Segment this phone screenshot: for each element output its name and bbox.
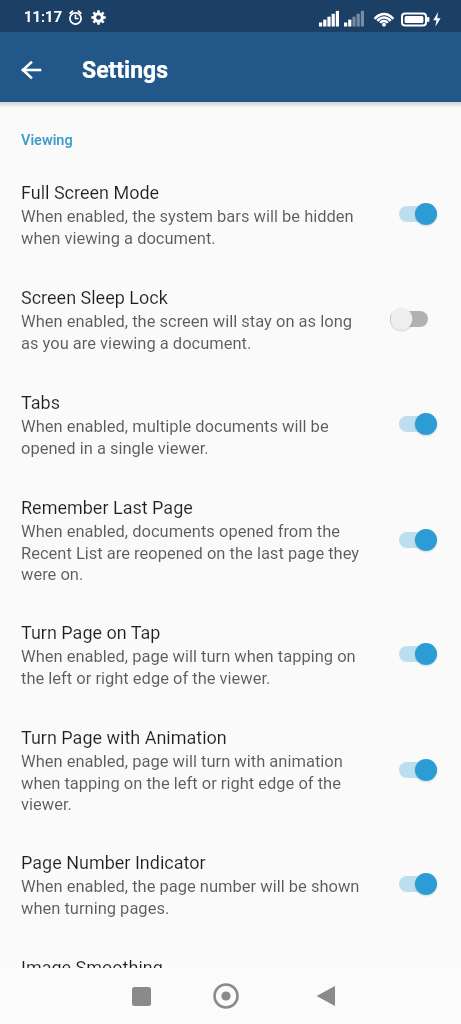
button[interactable] <box>390 201 437 227</box>
staticText: When enabled, the system bars will be hi… <box>21 207 354 248</box>
staticText: Remember Last Page <box>21 497 193 518</box>
staticText: Viewing <box>21 132 73 149</box>
staticText: When enabled, documents opened from the … <box>21 522 360 584</box>
button[interactable]: Page Number Indicator <box>0 852 461 957</box>
button[interactable] <box>117 972 165 1020</box>
staticText: When enabled, page will turn with animat… <box>21 752 343 814</box>
staticText: Image Smoothing <box>21 957 163 978</box>
button[interactable]: Image Smoothing <box>0 957 461 1024</box>
staticText: Turn Page with Animation <box>21 727 227 748</box>
staticText: When enabled, the screen will stay on as… <box>21 312 353 353</box>
button[interactable] <box>390 306 437 332</box>
button[interactable] <box>302 972 350 1020</box>
button[interactable]: Turn Page on Tap <box>0 622 461 727</box>
button[interactable]: Screen Sleep Lock <box>0 287 461 392</box>
button[interactable] <box>202 972 250 1020</box>
button[interactable]: Tabs <box>0 392 461 497</box>
staticText: When enabled, page will turn when tappin… <box>21 647 356 688</box>
staticText: When enabled, the image will be smoothed… <box>21 982 335 1023</box>
button[interactable] <box>390 527 437 553</box>
staticText: When enabled, multiple documents will be… <box>21 417 329 458</box>
staticText: Settings <box>82 57 169 84</box>
staticText: Full Screen Mode <box>21 182 160 203</box>
button[interactable] <box>390 641 437 667</box>
staticText: Tabs <box>21 392 60 413</box>
button[interactable]: Remember Last Page <box>0 497 461 622</box>
staticText: When enabled, the page number will be sh… <box>21 877 360 918</box>
staticText: Screen Sleep Lock <box>21 287 168 308</box>
button[interactable] <box>390 411 437 437</box>
staticText: Page Number Indicator <box>21 852 206 873</box>
button[interactable] <box>390 757 437 783</box>
staticText: Turn Page on Tap <box>21 622 161 643</box>
button[interactable]: Turn Page with Animation <box>0 727 461 852</box>
button[interactable]: Full Screen Mode <box>0 182 461 287</box>
button[interactable] <box>390 871 437 897</box>
staticText: 11:17 <box>24 8 63 26</box>
button[interactable] <box>7 46 55 94</box>
